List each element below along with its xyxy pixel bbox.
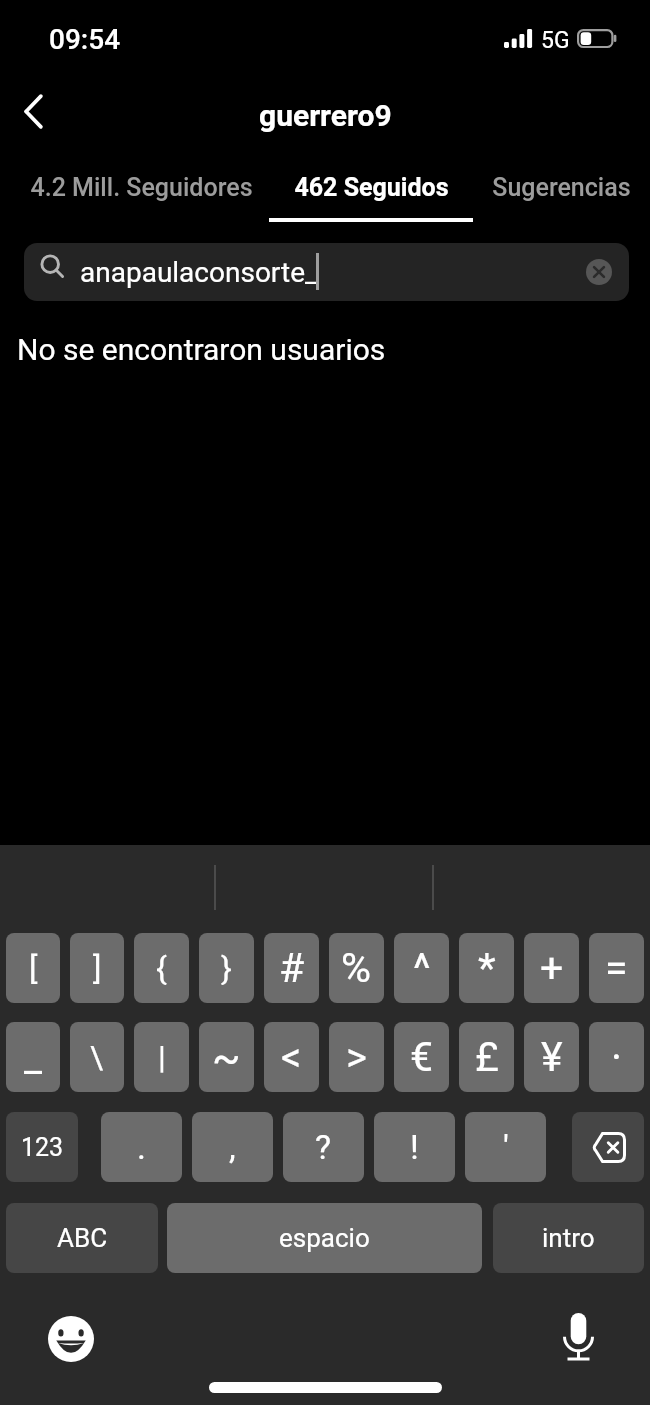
staticText: ] [93,949,102,987]
button[interactable]: # [264,933,319,1003]
staticText: * [478,944,496,992]
staticText: } [221,949,232,987]
button[interactable]: | [134,1022,189,1092]
staticText: _ [24,1034,43,1081]
button[interactable]: , [192,1112,273,1182]
button[interactable]: ^ [394,933,449,1003]
staticText: , [229,1127,236,1167]
button[interactable]: intro [493,1203,644,1273]
button[interactable]: + [524,933,579,1003]
staticText: € [410,1033,434,1081]
staticText: £ [475,1033,499,1081]
staticText: ¥ [541,1033,563,1081]
button[interactable]: espacio [167,1203,482,1273]
button[interactable]: ABC [6,1203,158,1273]
button[interactable]: Dictation [563,1313,594,1362]
button[interactable]: % [329,933,384,1003]
staticText: ' [503,1127,509,1167]
staticText: intro [542,1223,595,1253]
button[interactable]: Back [0,78,66,144]
staticText: 462 Seguidos [294,173,449,202]
staticText: + [540,944,564,992]
button[interactable]: 4.2 Mill. Seguidores [11,163,271,211]
button[interactable]: 462 Seguidos [241,163,501,211]
button[interactable]: Emoji keyboard [48,1316,94,1362]
staticText: anapaulaconsorte_ [80,256,318,289]
button[interactable]: < [264,1022,319,1092]
staticText: ABC [57,1223,108,1253]
button[interactable]: Sugerencias [431,163,650,211]
staticText: | [158,1038,166,1076]
staticText: ! [410,1127,419,1167]
button[interactable]: { [134,933,189,1003]
button[interactable]: ] [70,933,124,1003]
staticText: ^ [413,944,431,993]
staticText: 123 [21,1133,64,1162]
staticText: 4.2 Mill. Seguidores [30,173,253,202]
staticText: > [346,1034,367,1081]
staticText: \ [90,1038,104,1076]
button[interactable]: > [329,1022,384,1092]
button[interactable]: _ [6,1022,60,1092]
staticText: guerrero9 [259,98,392,133]
staticText: { [156,949,167,987]
button[interactable]: 123 [6,1112,78,1182]
button[interactable]: ! [374,1112,455,1182]
staticText: . [137,1127,146,1167]
button[interactable]: \ [70,1022,124,1092]
staticText: % [341,944,372,992]
button[interactable]: Clear search [582,255,616,289]
staticText: · [611,1033,622,1082]
button[interactable]: · [589,1022,644,1092]
button[interactable]: € [394,1022,449,1092]
button[interactable]: ? [283,1112,364,1182]
staticText: 5G [541,27,570,54]
staticText: Sugerencias [492,173,631,202]
staticText: No se encontraron usuarios [17,332,386,367]
staticText: 09:54 [49,23,121,56]
staticText: < [281,1034,302,1081]
button[interactable]: = [589,933,644,1003]
button[interactable]: } [199,933,254,1003]
button[interactable]: [ [6,933,60,1003]
staticText: [ [29,949,38,987]
staticText: ? [315,1127,332,1167]
staticText: ~ [212,1033,241,1082]
button[interactable]: . [101,1112,182,1182]
button[interactable]: * [459,933,514,1003]
staticText: espacio [279,1223,370,1253]
button[interactable]: ¥ [524,1022,579,1092]
button[interactable]: £ [459,1022,514,1092]
button[interactable]: Backspace [572,1112,644,1182]
staticText: = [605,944,628,992]
button[interactable]: ' [465,1112,546,1182]
button[interactable]: anapaulaconsorte_ [24,243,629,301]
button[interactable]: ~ [199,1022,254,1092]
staticText: # [279,944,305,992]
